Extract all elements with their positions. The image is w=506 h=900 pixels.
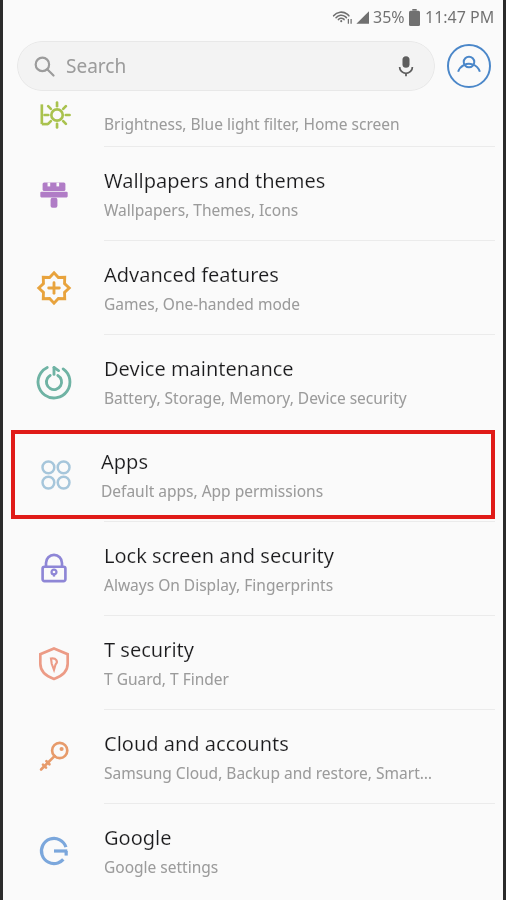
staticText: Always On Display, Fingerprints: [104, 574, 334, 595]
button[interactable]: Cloud and accounts: [3, 710, 503, 803]
staticText: Lock screen and security: [104, 542, 334, 569]
button[interactable]: Wallpapers and themes: [3, 147, 503, 240]
staticText: Device maintenance: [104, 355, 294, 382]
button[interactable]: Device maintenance: [3, 335, 503, 428]
staticText: Samsung Cloud, Backup and restore, Smart…: [104, 762, 432, 783]
staticText: Google settings: [104, 856, 219, 877]
button[interactable]: Voice search: [393, 53, 419, 79]
button[interactable]: T security: [3, 616, 503, 709]
button[interactable]: Account: [447, 44, 491, 88]
button[interactable]: Google: [3, 804, 503, 897]
staticText: Battery, Storage, Memory, Device securit…: [104, 387, 407, 408]
staticText: Advanced features: [104, 261, 279, 288]
staticText: Wallpapers, Themes, Icons: [104, 199, 299, 220]
staticText: T Guard, T Finder: [104, 668, 229, 689]
staticText: Apps: [101, 448, 148, 475]
staticText: Google: [104, 824, 172, 851]
button[interactable]: Search: [17, 41, 435, 91]
staticText: 35%: [373, 6, 405, 28]
button[interactable]: Advanced features: [3, 241, 503, 334]
button[interactable]: Brightness, Blue light filter, Home scre…: [3, 99, 503, 146]
staticText: Games, One-handed mode: [104, 293, 301, 314]
staticText: Wallpapers and themes: [104, 167, 326, 194]
staticText: Search: [66, 53, 127, 79]
staticText: Default apps, App permissions: [101, 480, 324, 501]
button[interactable]: Apps: [11, 430, 495, 519]
staticText: 11:47 PM: [425, 6, 495, 28]
staticText: Cloud and accounts: [104, 730, 289, 757]
staticText: T security: [104, 636, 194, 663]
button[interactable]: Lock screen and security: [3, 522, 503, 615]
staticText: Brightness, Blue light filter, Home scre…: [104, 113, 400, 134]
